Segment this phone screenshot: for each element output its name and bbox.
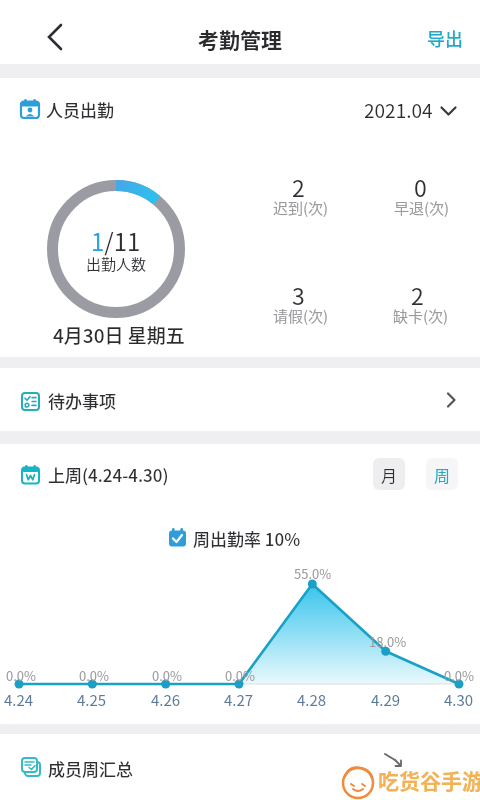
staticText: 考勤管理 bbox=[198, 24, 282, 54]
button[interactable]: 导出 bbox=[415, 15, 475, 60]
button[interactable] bbox=[355, 88, 465, 130]
staticText: 待办事项 bbox=[48, 388, 116, 413]
staticText: 0.0% bbox=[79, 666, 110, 685]
staticText: 2 bbox=[292, 170, 305, 203]
button[interactable]: 周 bbox=[426, 458, 458, 490]
staticText: 周 bbox=[434, 463, 451, 486]
staticText: 4.26 bbox=[151, 689, 181, 711]
staticText: 4.24 bbox=[4, 689, 34, 711]
staticText: 人员出勤 bbox=[46, 97, 114, 122]
button[interactable] bbox=[0, 368, 480, 431]
button[interactable]: 月 bbox=[373, 458, 405, 490]
staticText: 2 bbox=[411, 278, 424, 311]
staticText: 周出勤率 10% bbox=[193, 526, 301, 551]
staticText: 出勤人数 bbox=[86, 253, 147, 275]
staticText: 0.0% bbox=[225, 666, 256, 685]
staticText: 0.0% bbox=[444, 666, 475, 685]
staticText: 55.0% bbox=[294, 564, 332, 583]
staticText: 2021.04 bbox=[364, 96, 433, 124]
staticText: 4.30 bbox=[444, 689, 474, 711]
staticText: 4.25 bbox=[77, 689, 107, 711]
button[interactable] bbox=[30, 12, 80, 62]
staticText: 18.0% bbox=[369, 632, 407, 651]
staticText: 导出 bbox=[427, 25, 463, 51]
staticText: 缺卡(次) bbox=[393, 305, 449, 327]
staticText: 上周(4.24-4.30) bbox=[48, 462, 169, 487]
staticText: 4.27 bbox=[224, 689, 254, 711]
staticText: 4.28 bbox=[297, 689, 327, 711]
staticText: 1/11 bbox=[91, 223, 141, 258]
staticText: 迟到(次) bbox=[273, 197, 329, 219]
staticText: 4月30日 星期五 bbox=[53, 321, 185, 349]
staticText: 吃货谷手游 bbox=[378, 765, 480, 795]
button[interactable] bbox=[0, 734, 480, 800]
staticText: 月 bbox=[381, 463, 398, 486]
staticText: 0 bbox=[414, 170, 427, 203]
staticText: 3 bbox=[292, 278, 305, 311]
staticText: 成员周汇总 bbox=[48, 756, 133, 781]
staticText: 0.0% bbox=[6, 666, 37, 685]
staticText: 0.0% bbox=[152, 666, 183, 685]
staticText: 请假(次) bbox=[273, 305, 329, 327]
staticText: 早退(次) bbox=[394, 197, 450, 219]
staticText: 4.29 bbox=[371, 689, 401, 711]
